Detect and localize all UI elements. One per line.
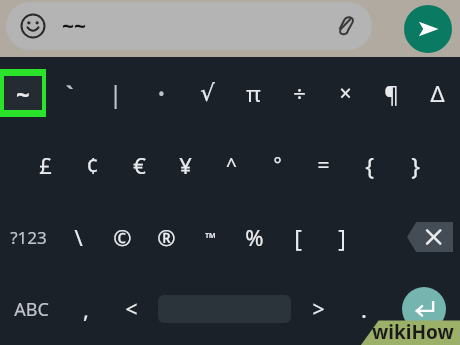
button[interactable]: } <box>392 129 438 201</box>
button[interactable]: Emoji <box>6 2 372 50</box>
button[interactable]: Attach <box>332 13 358 39</box>
staticText: ` <box>65 78 74 108</box>
button[interactable]: π <box>230 57 276 129</box>
button[interactable]: ?123 <box>0 201 56 273</box>
staticText: € <box>133 150 146 180</box>
button[interactable]: ™ <box>188 201 232 273</box>
staticText: , <box>83 294 89 324</box>
staticText: ¢ <box>86 150 99 180</box>
button[interactable]: ~ <box>4 76 42 110</box>
staticText: © <box>113 222 132 252</box>
staticText: { <box>365 150 374 181</box>
button[interactable]: © <box>100 201 144 273</box>
staticText: ] <box>338 222 346 253</box>
staticText: ¥ <box>179 150 192 180</box>
staticText: ¶ <box>384 78 399 108</box>
staticText: \ <box>74 222 83 252</box>
button[interactable]: = <box>300 129 346 201</box>
staticText: > <box>312 295 325 324</box>
button[interactable]: [ <box>276 201 320 273</box>
button[interactable]: × <box>322 57 368 129</box>
staticText: • <box>158 81 165 106</box>
button[interactable]: ® <box>144 201 188 273</box>
staticText: % <box>245 222 264 252</box>
button[interactable]: Enter <box>402 287 446 331</box>
button[interactable]: \ <box>56 201 100 273</box>
staticText: √ <box>200 80 215 107</box>
button[interactable]: > <box>295 273 341 345</box>
button[interactable]: . <box>341 273 387 345</box>
staticText: [ <box>294 222 302 253</box>
button[interactable]: Emoji <box>20 13 46 39</box>
staticText: Δ <box>430 78 445 108</box>
staticText: = <box>317 151 330 180</box>
button[interactable]: Δ <box>414 57 460 129</box>
staticText: ~ <box>16 77 30 110</box>
staticText: . <box>361 294 367 324</box>
staticText: ® <box>157 222 176 252</box>
staticText: ° <box>273 152 282 178</box>
staticText: ™ <box>205 228 216 247</box>
button[interactable]: √ <box>184 57 230 129</box>
staticText: ?123 <box>10 226 47 249</box>
button[interactable]: ` <box>46 57 92 129</box>
button[interactable]: ^ <box>208 129 254 201</box>
button[interactable]: ÷ <box>276 57 322 129</box>
button[interactable]: € <box>116 129 162 201</box>
button[interactable]: % <box>232 201 276 273</box>
staticText: × <box>339 79 352 108</box>
button[interactable]: ABC <box>0 273 63 345</box>
button[interactable]: ° <box>254 129 300 201</box>
staticText: π <box>246 78 261 108</box>
button[interactable]: ] <box>320 201 364 273</box>
staticText: ~~ <box>62 12 87 41</box>
button[interactable]: £ <box>22 129 69 201</box>
button[interactable]: ¥ <box>162 129 208 201</box>
staticText: ÷ <box>293 78 306 108</box>
staticText: | <box>109 78 122 109</box>
button[interactable]: ¶ <box>368 57 414 129</box>
staticText: } <box>411 150 420 181</box>
button[interactable]: Backspace <box>399 201 460 273</box>
button[interactable]: { <box>346 129 392 201</box>
button[interactable]: • <box>138 57 184 129</box>
button[interactable]: | <box>92 57 138 129</box>
button[interactable]: ¢ <box>69 129 116 201</box>
staticText: ABC <box>14 297 49 322</box>
button[interactable]: < <box>108 273 154 345</box>
staticText: < <box>125 295 138 324</box>
staticText: wikiHow <box>372 319 454 345</box>
button[interactable]: Send <box>404 5 452 53</box>
staticText: £ <box>39 150 52 180</box>
staticText: ^ <box>226 152 237 178</box>
button[interactable]: , <box>63 273 108 345</box>
